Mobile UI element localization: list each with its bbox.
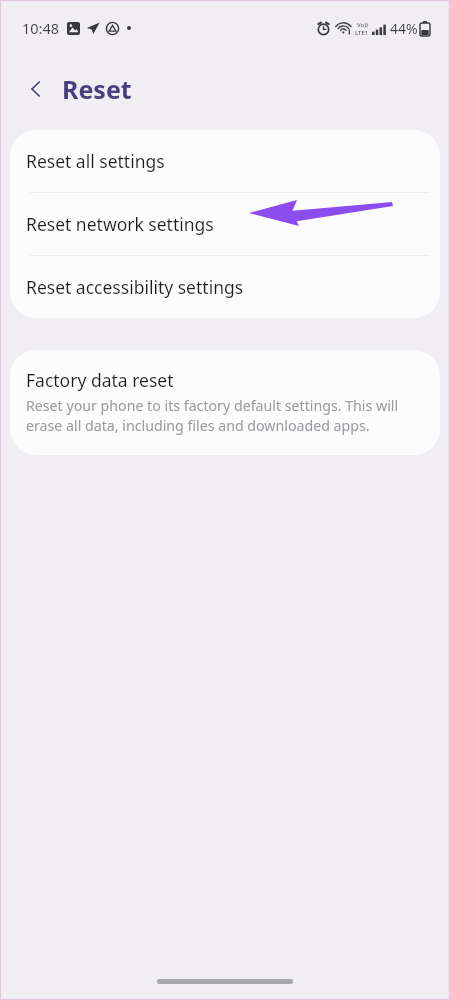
staticText: Factory data reset [26, 368, 174, 392]
staticText: 10:48 [22, 18, 60, 38]
staticText: Reset your phone to its factory default … [26, 396, 422, 435]
staticText: Reset network settings [26, 212, 214, 236]
button[interactable]: Reset accessibility settings [10, 256, 440, 318]
staticText: Vo)) [357, 21, 368, 29]
staticText: LTE1 [355, 29, 369, 37]
staticText: 44% [390, 19, 418, 38]
button[interactable]: Factory data reset [10, 350, 440, 455]
button[interactable]: Reset all settings [10, 130, 440, 192]
staticText: Reset [62, 72, 132, 106]
button[interactable]: Back [14, 67, 58, 111]
staticText: Reset accessibility settings [26, 275, 244, 299]
button[interactable]: Reset network settings [10, 193, 440, 255]
staticText: Reset all settings [26, 149, 165, 173]
